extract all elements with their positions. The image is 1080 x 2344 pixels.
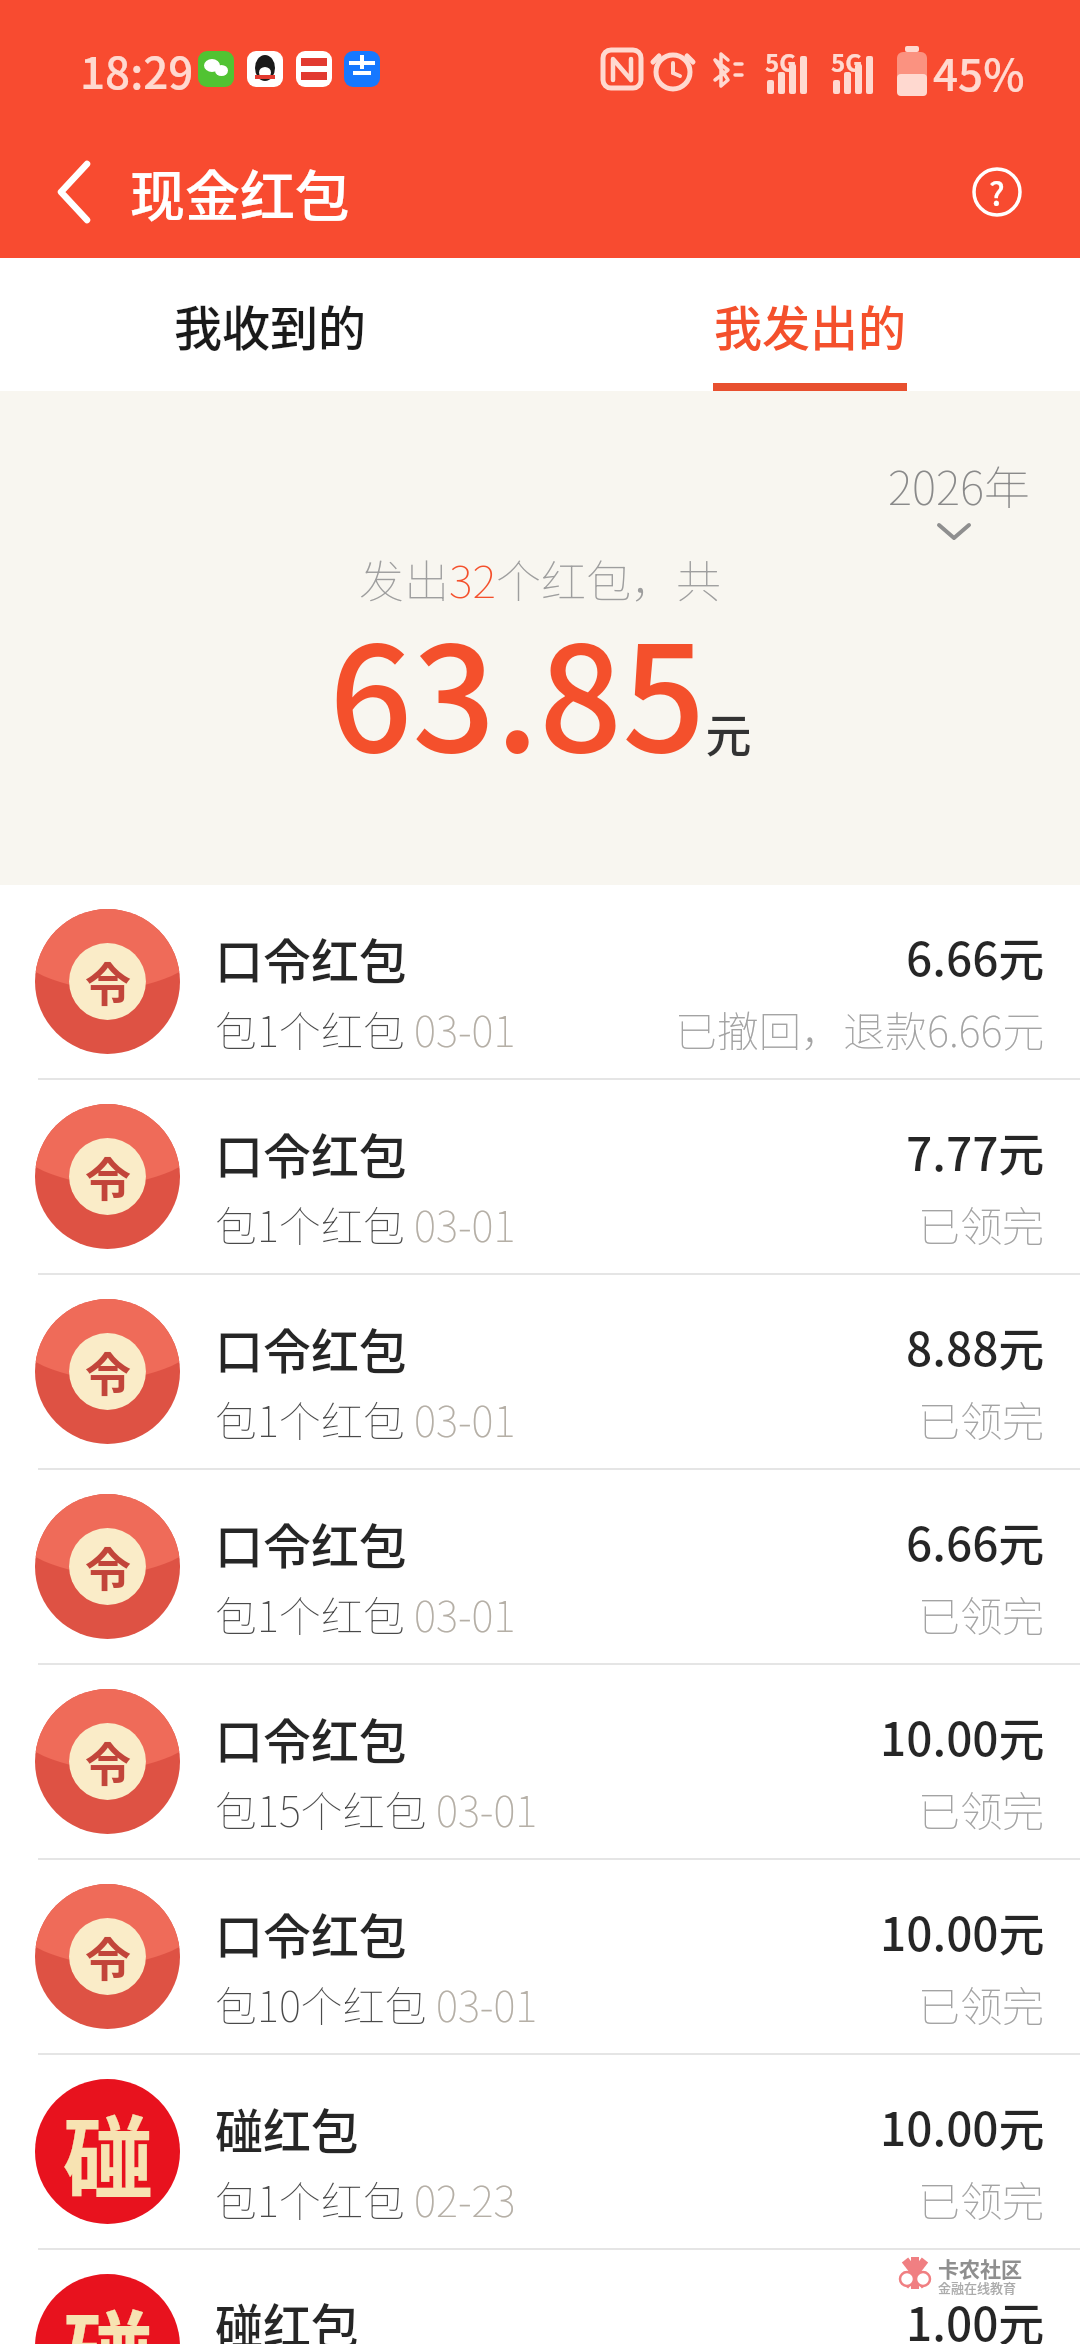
staticText: 已领完 bbox=[918, 2168, 1045, 2224]
staticText: 包1个红包 03-01 bbox=[215, 1388, 516, 1444]
button[interactable]: 我发出的 bbox=[665, 258, 955, 391]
staticText: 金融在线教育 bbox=[938, 2278, 1017, 2297]
staticText: 10.00元 bbox=[880, 2093, 1045, 2157]
staticText: 45% bbox=[933, 40, 1025, 104]
button[interactable]: 令 bbox=[0, 1665, 1080, 1860]
staticText: 我收到的 bbox=[174, 290, 367, 360]
staticText: 2026年 bbox=[888, 452, 1030, 508]
staticText: 发出32个红包，共 bbox=[359, 546, 721, 602]
staticText: 8.88元 bbox=[906, 1313, 1045, 1377]
staticText: 包1个红包 03-01 bbox=[215, 1583, 516, 1639]
staticText: 1.00元 bbox=[906, 2288, 1045, 2344]
button[interactable]: 我收到的 bbox=[125, 258, 415, 391]
staticText: 卡农社区 bbox=[938, 2253, 1022, 2283]
staticText: 口令红包 bbox=[215, 1898, 408, 1962]
staticText: 碰红包 bbox=[215, 2288, 360, 2344]
staticText: 包1个红包 03-01 bbox=[215, 998, 516, 1054]
staticText: 包15个红包 03-01 bbox=[215, 1778, 538, 1834]
button[interactable]: 令 bbox=[0, 1080, 1080, 1275]
staticText: ? bbox=[989, 169, 1005, 215]
staticText: 6.66元 bbox=[906, 923, 1045, 987]
staticText: 包1个红包 02-23 bbox=[215, 2168, 516, 2224]
staticText: 令 bbox=[85, 1143, 131, 1210]
staticText: 令 bbox=[85, 1533, 131, 1600]
button[interactable] bbox=[30, 147, 120, 237]
staticText: 碰 bbox=[63, 2282, 153, 2344]
button[interactable]: 碰 bbox=[0, 2055, 1080, 2250]
staticText: 已撤回，退款6.66元 bbox=[675, 998, 1045, 1054]
staticText: 现金红包 bbox=[130, 152, 351, 232]
staticText: 已领完 bbox=[918, 1583, 1045, 1639]
staticText: 5G bbox=[831, 44, 863, 79]
staticText: 10.00元 bbox=[880, 1703, 1045, 1767]
staticText: 18:29 bbox=[80, 38, 194, 102]
staticText: 口令红包 bbox=[215, 1313, 408, 1377]
staticText: 碰红包 bbox=[215, 2093, 360, 2157]
staticText: 令 bbox=[85, 1338, 131, 1405]
button[interactable]: ? bbox=[962, 157, 1032, 227]
staticText: 包1个红包 03-01 bbox=[215, 1193, 516, 1249]
staticText: 碰 bbox=[63, 2087, 153, 2217]
button[interactable]: 2026年 bbox=[810, 446, 1040, 556]
staticText: 已领完 bbox=[918, 1193, 1045, 1249]
staticText: 口令红包 bbox=[215, 1508, 408, 1572]
staticText: 7.77元 bbox=[906, 1118, 1045, 1182]
staticText: 口令红包 bbox=[215, 1118, 408, 1182]
staticText: 已领完 bbox=[918, 1778, 1045, 1834]
button[interactable]: 碰 bbox=[0, 2250, 1080, 2344]
staticText: 令 bbox=[85, 948, 131, 1015]
staticText: 已领完 bbox=[918, 1388, 1045, 1444]
staticText: 已领完 bbox=[918, 1973, 1045, 2029]
staticText: 令 bbox=[85, 1923, 131, 1990]
staticText: 包10个红包 03-01 bbox=[215, 1973, 538, 2029]
staticText: 我发出的 bbox=[714, 290, 907, 360]
button[interactable]: 令 bbox=[0, 1275, 1080, 1470]
button[interactable]: 令 bbox=[0, 885, 1080, 1080]
staticText: 口令红包 bbox=[215, 923, 408, 987]
staticText: 10.00元 bbox=[880, 1898, 1045, 1962]
button[interactable]: 令 bbox=[0, 1860, 1080, 2055]
staticText: 63.85元 bbox=[329, 583, 752, 783]
staticText: 口令红包 bbox=[215, 1703, 408, 1767]
staticText: 令 bbox=[85, 1728, 131, 1795]
button[interactable]: 令 bbox=[0, 1470, 1080, 1665]
staticText: 6.66元 bbox=[906, 1508, 1045, 1572]
staticText: 5G bbox=[765, 44, 797, 79]
